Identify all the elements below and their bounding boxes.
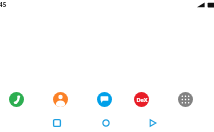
staticText: 45 — [0, 0, 7, 9]
button[interactable]: Sansung DeX — [134, 92, 149, 107]
button[interactable]: Contacts — [53, 92, 68, 107]
button[interactable]: Messages — [97, 92, 112, 107]
staticText: DeX — [136, 96, 148, 104]
button[interactable]: Phone — [9, 92, 24, 107]
button[interactable]: Back — [143, 113, 163, 132]
button[interactable]: Recents — [47, 113, 67, 132]
button[interactable]: Apps — [178, 92, 193, 107]
button[interactable]: Home — [96, 113, 116, 132]
